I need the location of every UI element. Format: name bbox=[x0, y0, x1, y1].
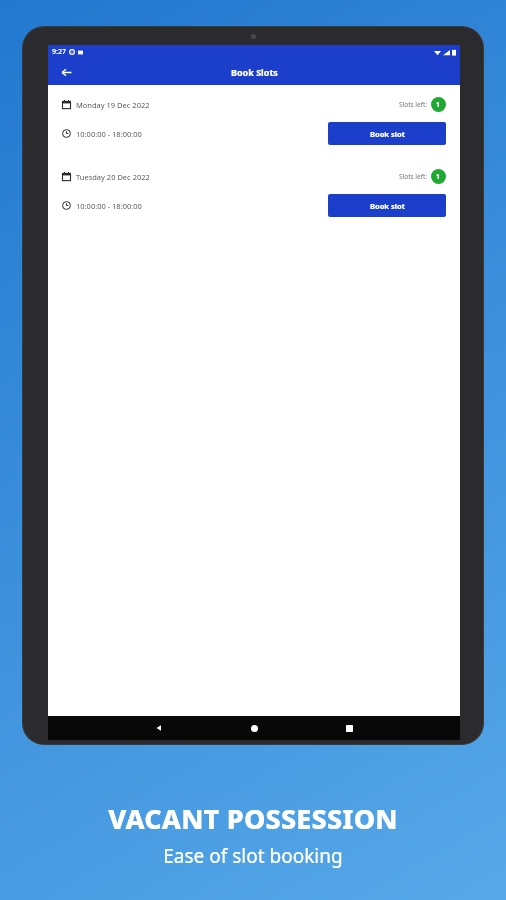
staticText: Ease of slot booking bbox=[163, 843, 343, 869]
staticText: Book slot bbox=[370, 129, 405, 139]
staticText: 10:00:00 - 18:00:00 bbox=[76, 201, 142, 211]
button[interactable]: Back bbox=[149, 718, 169, 738]
button[interactable]: Home bbox=[244, 718, 264, 738]
staticText: 10:00:00 - 18:00:00 bbox=[76, 129, 142, 139]
staticText: Monday 19 Dec 2022 bbox=[76, 100, 150, 110]
staticText: Book slot bbox=[370, 201, 405, 211]
staticText: Slots left: bbox=[399, 100, 427, 109]
staticText: 1 bbox=[436, 100, 441, 110]
staticText: 9:27 bbox=[52, 47, 66, 57]
staticText: Slots left: bbox=[399, 172, 427, 181]
button[interactable]: Monday 19 Dec 2022 bbox=[53, 89, 455, 153]
button[interactable]: Tuesday 20 Dec 2022 bbox=[53, 161, 455, 225]
button[interactable]: Recent apps bbox=[339, 718, 359, 738]
button[interactable]: Book slot bbox=[328, 194, 446, 217]
button[interactable]: Book slot bbox=[328, 122, 446, 145]
staticText: 1 bbox=[436, 172, 441, 182]
staticText: VACANT POSSESSION bbox=[108, 800, 398, 837]
staticText: Tuesday 20 Dec 2022 bbox=[76, 172, 150, 182]
staticText: Book Slots bbox=[231, 66, 278, 78]
button[interactable]: Back bbox=[57, 63, 75, 81]
